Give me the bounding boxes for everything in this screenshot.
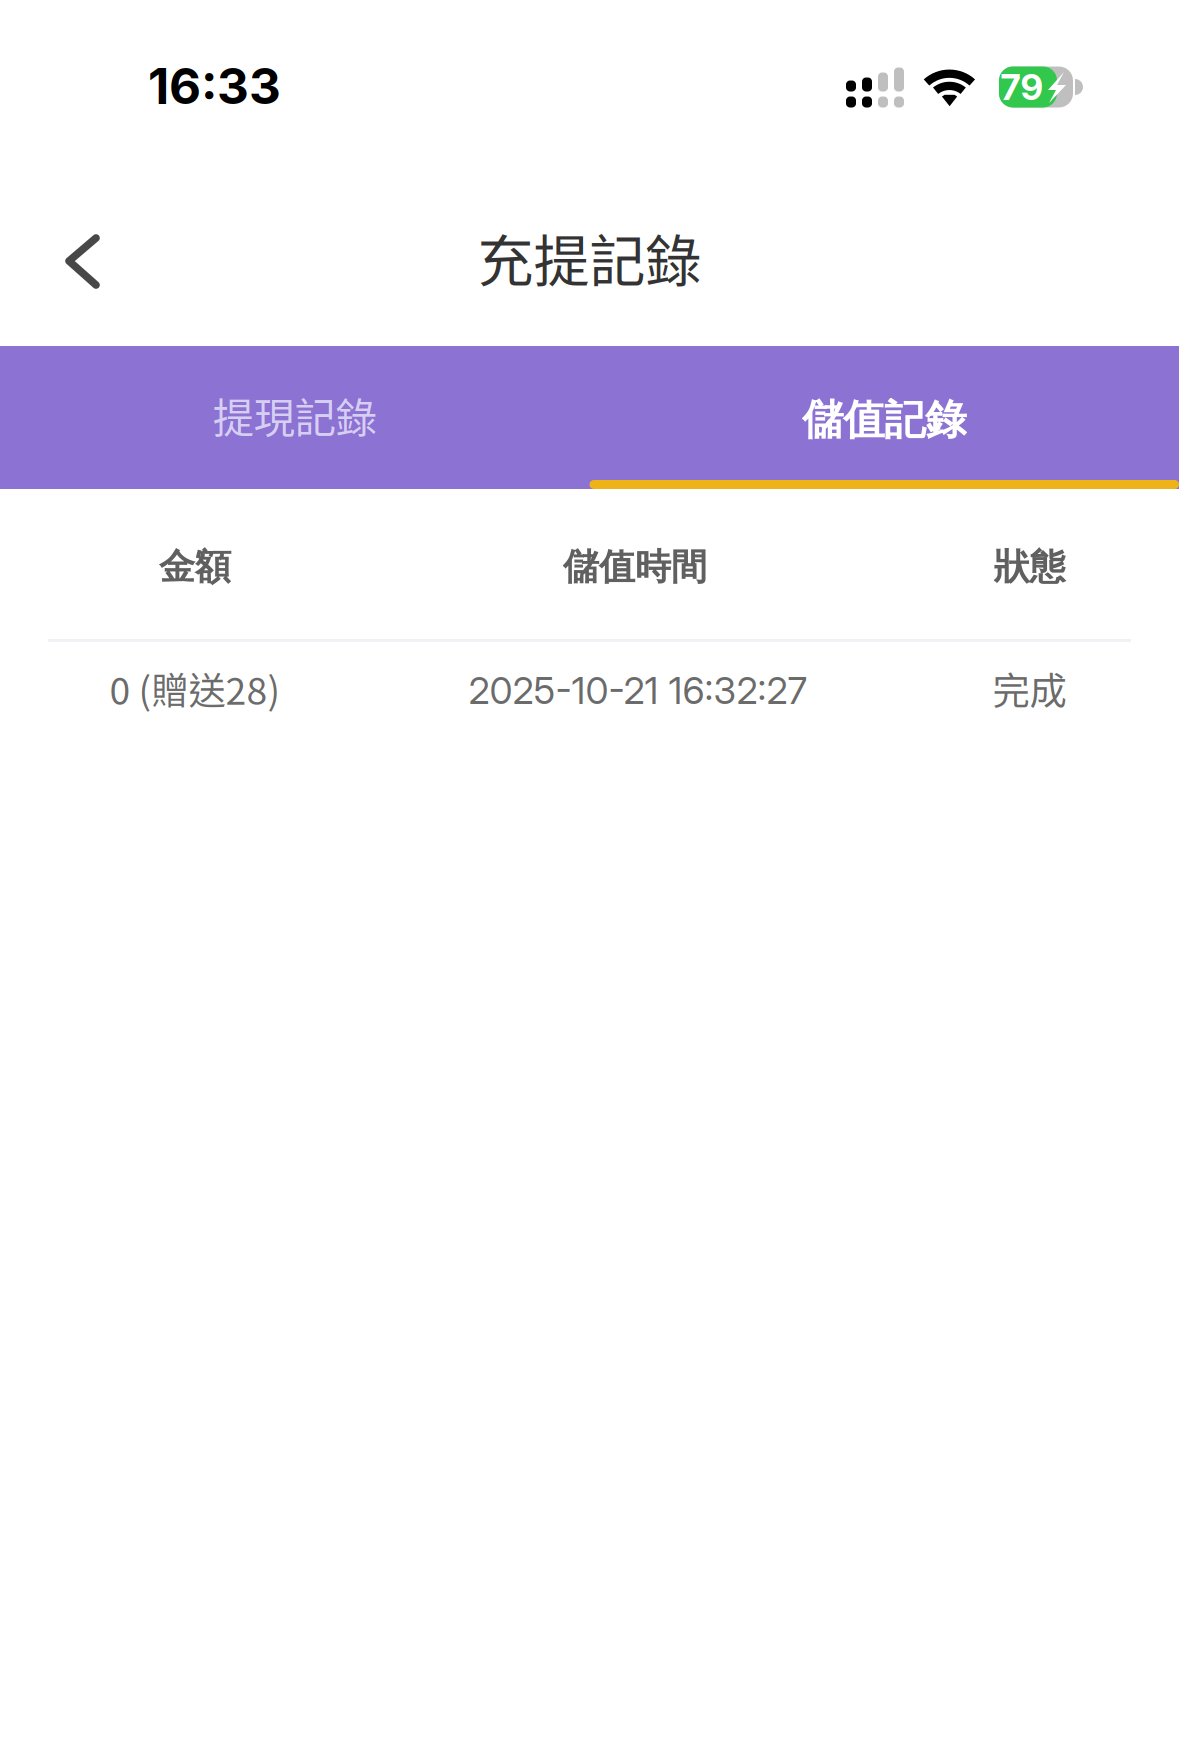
button[interactable]: 提現記錄 (0, 346, 589, 489)
button[interactable]: 0 (贈送28) (0, 642, 1179, 743)
staticText: 16:33 (148, 56, 281, 116)
button[interactable]: 儲值記錄 (589, 346, 1179, 489)
staticText: 完成 (992, 661, 1066, 716)
staticText: 儲值時間 (563, 544, 707, 590)
staticText: 充提記錄 (477, 216, 701, 298)
staticText: 2025-10-21 16:32:27 (468, 668, 807, 713)
button[interactable]: Back (0, 206, 138, 316)
staticText: 儲值記錄 (802, 394, 966, 446)
staticText: 79 (1000, 65, 1043, 109)
staticText: 金額 (159, 544, 231, 590)
staticText: 0 (贈送28) (109, 661, 280, 716)
staticText: 提現記錄 (213, 385, 377, 445)
staticText: 狀態 (993, 544, 1065, 590)
